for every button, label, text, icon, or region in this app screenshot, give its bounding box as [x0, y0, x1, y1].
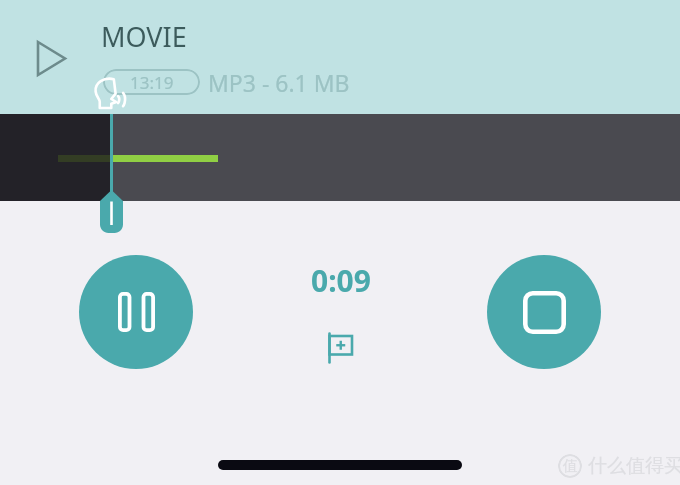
staticText: 值 [563, 457, 578, 476]
staticText: 13:19 [130, 71, 174, 94]
staticText: MP3 - 6.1 MB [208, 67, 350, 98]
button[interactable]: Stop [487, 255, 601, 369]
staticText: 0:09 [311, 260, 371, 301]
button[interactable]: Pause [79, 255, 193, 369]
button[interactable]: Add bookmark [326, 331, 354, 365]
staticText: 什么值得买 [588, 454, 680, 478]
staticText: MOVIE [101, 18, 187, 55]
button[interactable]: Play [36, 40, 67, 77]
